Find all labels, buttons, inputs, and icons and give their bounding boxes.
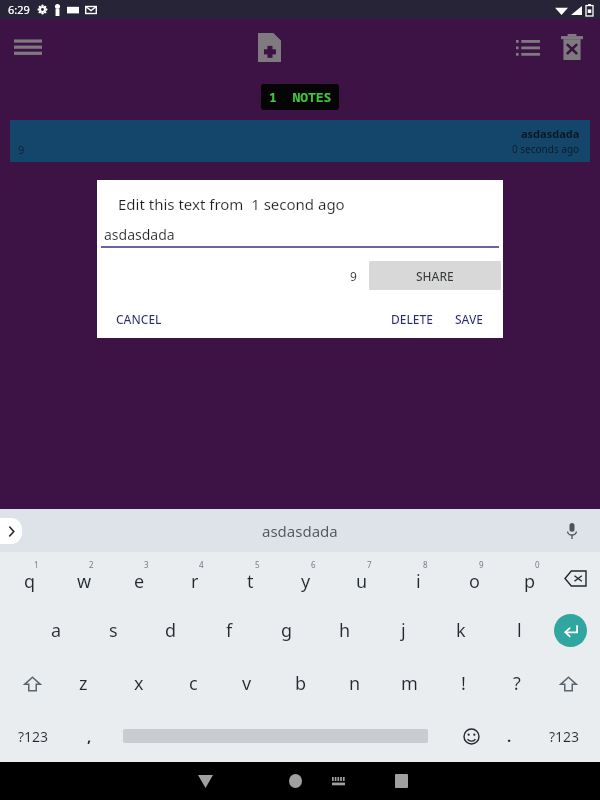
staticText: z (79, 671, 88, 696)
staticText: asdasdada (104, 225, 175, 244)
staticText: ? (513, 671, 521, 696)
staticText: w (77, 569, 92, 594)
button[interactable]: k (432, 604, 490, 657)
button[interactable]: m (382, 657, 436, 710)
staticText: y (301, 569, 311, 594)
staticText: asdasdada (262, 521, 338, 541)
staticText: 1 (34, 559, 39, 570)
staticText: SAVE (455, 311, 484, 327)
button[interactable]: 9 (446, 552, 502, 604)
button[interactable]: 1 NOTES (261, 84, 339, 110)
button[interactable]: 7 (334, 552, 390, 604)
staticText: 9 (479, 559, 484, 570)
staticText: asdasdada (521, 126, 580, 141)
button[interactable]: b (274, 657, 328, 710)
button[interactable]: a (28, 604, 85, 657)
button[interactable]: j (374, 604, 432, 657)
button[interactable]: l (490, 604, 548, 657)
staticText: g (281, 618, 293, 643)
staticText: k (456, 618, 466, 643)
button[interactable]: List view (508, 27, 548, 67)
button[interactable]: s (85, 604, 142, 657)
button[interactable]: Emoji (457, 722, 485, 750)
staticText: 9 (350, 268, 357, 284)
button[interactable]: New note (248, 26, 290, 68)
staticText: ! (461, 671, 466, 696)
staticText: 7 (367, 559, 372, 570)
staticText: d (165, 618, 177, 643)
button[interactable]: Back (188, 764, 222, 798)
button[interactable]: f (200, 604, 258, 657)
button[interactable]: ? (490, 657, 544, 710)
button[interactable]: 6 (278, 552, 334, 604)
staticText: x (134, 671, 144, 696)
staticText: ?123 (549, 727, 580, 746)
button[interactable]: DELETE (385, 306, 439, 332)
staticText: o (469, 569, 480, 594)
other: Keyboard active (325, 768, 351, 794)
staticText: u (356, 569, 368, 594)
button[interactable]: 2 (57, 552, 112, 604)
button[interactable]: n (328, 657, 382, 710)
button[interactable]: 8 (390, 552, 446, 604)
button[interactable]: Period (496, 723, 522, 749)
button[interactable]: Enter (554, 614, 587, 647)
button[interactable]: 4 (167, 552, 222, 604)
button[interactable]: Shift (552, 668, 584, 700)
staticText: . (507, 726, 512, 746)
button[interactable]: CANCEL (110, 306, 168, 332)
button[interactable]: Backspace (558, 561, 592, 595)
staticText: h (339, 618, 351, 643)
staticText: e (134, 569, 145, 594)
button[interactable]: h (316, 604, 374, 657)
button[interactable]: 5 (222, 552, 278, 604)
button[interactable]: asdasdada (254, 513, 346, 549)
staticText: l (517, 618, 522, 643)
staticText: 2 (89, 559, 94, 570)
staticText: 9 (18, 142, 25, 157)
button[interactable]: x (111, 657, 166, 710)
button[interactable]: 3 (112, 552, 167, 604)
staticText: n (349, 671, 361, 696)
button[interactable]: SAVE (449, 306, 490, 332)
button[interactable]: z (56, 657, 111, 710)
staticText: b (295, 671, 307, 696)
staticText: 0 seconds ago (512, 142, 580, 156)
button[interactable]: ! (436, 657, 490, 710)
button[interactable]: More suggestions (0, 518, 22, 544)
staticText: i (416, 569, 421, 594)
button[interactable]: ?123 (10, 719, 57, 754)
staticText: 3 (144, 559, 149, 570)
button[interactable]: Home (279, 765, 311, 797)
staticText: q (24, 569, 36, 594)
staticText: DELETE (391, 311, 433, 327)
staticText: Edit this text from 1 second ago (118, 194, 345, 214)
staticText: , (87, 726, 92, 746)
staticText: 4 (199, 559, 204, 570)
button[interactable]: 0 (502, 552, 558, 604)
button[interactable]: v (220, 657, 274, 710)
button[interactable]: Comma (75, 722, 103, 750)
staticText: t (247, 569, 254, 594)
button[interactable]: g (258, 604, 316, 657)
staticText: f (226, 618, 233, 643)
button[interactable]: Voice input (560, 519, 584, 543)
staticText: 6:29 (8, 2, 30, 17)
staticText: 6 (311, 559, 316, 570)
staticText: v (242, 671, 252, 696)
button[interactable]: Menu (8, 27, 48, 67)
button[interactable]: ?123 (541, 719, 588, 754)
button[interactable]: 1 (2, 552, 57, 604)
staticText: CANCEL (116, 311, 162, 327)
button[interactable]: c (166, 657, 220, 710)
staticText: s (109, 618, 118, 643)
button[interactable]: Shift (16, 668, 48, 700)
staticText: a (51, 618, 62, 643)
button[interactable]: Recent apps (385, 765, 417, 797)
button[interactable]: d (142, 604, 200, 657)
button[interactable]: SHARE (369, 261, 501, 290)
button[interactable]: Delete all (552, 27, 592, 67)
staticText: p (524, 569, 536, 594)
button[interactable]: 9 (10, 120, 590, 162)
